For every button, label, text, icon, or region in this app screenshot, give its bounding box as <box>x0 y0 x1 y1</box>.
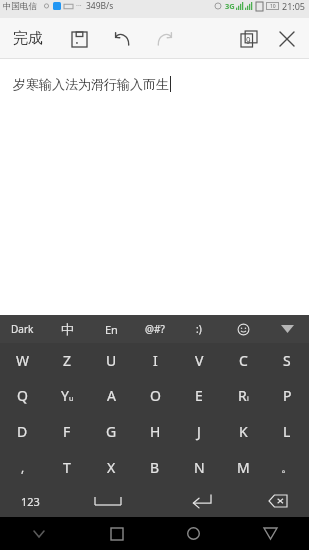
staticText: u <box>69 394 74 404</box>
staticText: ··· <box>76 1 82 11</box>
staticText: I <box>153 351 158 370</box>
staticText: 21:05 <box>282 0 306 12</box>
staticText: En <box>105 322 118 337</box>
button[interactable]: X <box>89 449 133 485</box>
button[interactable]: Redo <box>150 24 180 54</box>
button[interactable]: N <box>177 449 221 485</box>
button[interactable]: Back <box>232 517 309 550</box>
button[interactable]: K <box>221 413 265 449</box>
staticText: B <box>150 458 160 477</box>
button[interactable]: Tabs, 9 open <box>234 24 264 54</box>
button[interactable]: Recent apps <box>78 517 155 550</box>
staticText: W <box>16 351 30 370</box>
button[interactable]: Undo <box>107 24 137 54</box>
staticText: 9 <box>246 35 251 46</box>
staticText: 中 <box>61 321 74 337</box>
button[interactable]: 。 <box>265 449 309 485</box>
button[interactable]: 123 <box>0 485 61 517</box>
staticText: V <box>195 351 204 370</box>
button[interactable]: D <box>0 413 45 449</box>
button[interactable]: Backspace <box>247 485 309 517</box>
button[interactable]: F <box>45 413 89 449</box>
staticText: 完成 <box>13 29 43 48</box>
button[interactable]: 中 <box>45 315 89 343</box>
staticText: U <box>106 351 117 370</box>
button[interactable]: T <box>45 449 89 485</box>
staticText: E <box>195 386 203 405</box>
staticText: S <box>283 351 291 370</box>
staticText: 中国电信 <box>3 1 37 12</box>
button[interactable]: B <box>133 449 177 485</box>
staticText: 3G <box>225 1 235 11</box>
staticText: T <box>63 458 71 477</box>
button[interactable]: Z <box>45 343 89 378</box>
staticText: L <box>283 422 291 441</box>
button[interactable]: :) <box>177 315 221 343</box>
staticText: X <box>107 458 116 477</box>
staticText: R <box>238 386 247 405</box>
staticText: 岁寒输入法为滑行输入而生 <box>13 76 169 92</box>
button[interactable]: Q <box>0 378 45 413</box>
staticText: Q <box>17 386 28 405</box>
button[interactable]: O <box>133 378 177 413</box>
button[interactable]: , <box>0 449 45 485</box>
staticText: @#? <box>145 322 165 336</box>
staticText: 10 <box>270 3 276 9</box>
button[interactable]: Emoji <box>221 315 265 343</box>
staticText: :) <box>196 322 202 336</box>
staticText: A <box>107 386 116 405</box>
staticText: Y <box>61 386 69 405</box>
staticText: J <box>197 422 201 441</box>
button[interactable]: Hide keyboard <box>0 517 78 550</box>
button[interactable]: Home <box>155 517 232 550</box>
button[interactable]: L <box>265 413 309 449</box>
button[interactable]: En <box>89 315 133 343</box>
staticText: Z <box>63 351 72 370</box>
staticText: M <box>237 458 250 477</box>
staticText: O <box>150 386 161 405</box>
button[interactable]: Space <box>61 485 154 517</box>
button[interactable]: A <box>89 378 133 413</box>
button[interactable]: Y <box>45 378 89 413</box>
button[interactable]: 完成 <box>10 23 46 54</box>
staticText: H <box>150 422 161 441</box>
staticText: 。 <box>281 460 293 475</box>
staticText: 349B/s <box>86 0 114 12</box>
staticText: K <box>239 422 248 441</box>
button[interactable]: H <box>133 413 177 449</box>
button[interactable]: I <box>133 343 177 378</box>
button[interactable]: V <box>177 343 221 378</box>
staticText: G <box>106 422 117 441</box>
button[interactable]: Save <box>64 24 94 54</box>
button[interactable]: Close <box>271 23 303 55</box>
button[interactable]: Hide keyboard <box>265 315 309 343</box>
staticText: i <box>247 394 249 404</box>
staticText: Dark <box>11 322 34 336</box>
staticText: 123 <box>21 494 40 509</box>
button[interactable]: U <box>89 343 133 378</box>
staticText: F <box>63 422 71 441</box>
button[interactable]: P <box>265 378 309 413</box>
staticText: D <box>17 422 28 441</box>
button[interactable]: C <box>221 343 265 378</box>
button[interactable]: J <box>177 413 221 449</box>
button[interactable]: M <box>221 449 265 485</box>
staticText: P <box>283 386 292 405</box>
button[interactable]: G <box>89 413 133 449</box>
staticText: C <box>239 351 248 370</box>
staticText: N <box>194 458 205 477</box>
button[interactable]: S <box>265 343 309 378</box>
button[interactable]: @#? <box>133 315 177 343</box>
button[interactable]: W <box>0 343 45 378</box>
button[interactable]: Enter <box>154 485 247 517</box>
staticText: , <box>21 459 25 475</box>
button[interactable]: Dark <box>0 315 45 343</box>
button[interactable]: E <box>177 378 221 413</box>
button[interactable]: R <box>221 378 265 413</box>
